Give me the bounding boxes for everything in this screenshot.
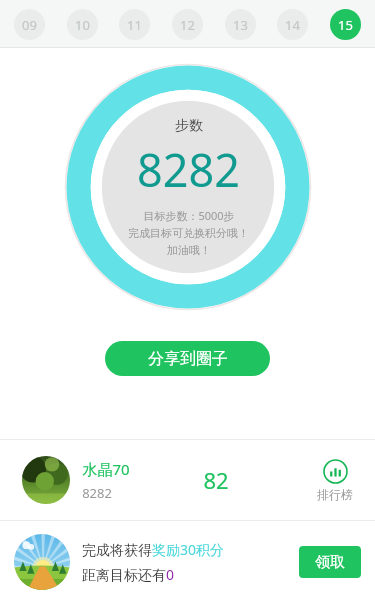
button[interactable]: 领取: [299, 546, 361, 578]
button[interactable]: 09: [14, 9, 45, 40]
button[interactable]: 14: [277, 9, 308, 40]
staticText: 15: [338, 16, 353, 34]
staticText: 领取: [315, 553, 345, 572]
staticText: 加油哦！: [167, 243, 211, 257]
staticText: 11: [127, 16, 142, 34]
button[interactable]: 10: [67, 9, 98, 40]
staticText: 步数: [175, 117, 203, 135]
staticText: 12: [180, 16, 195, 34]
button[interactable]: 15: [330, 9, 361, 40]
staticText: 09: [22, 16, 37, 34]
staticText: 距离目标还有0: [82, 565, 175, 584]
button[interactable]: 11: [119, 9, 150, 40]
staticText: 8282: [82, 484, 112, 502]
staticText: 排行榜: [317, 487, 353, 502]
button[interactable]: 水晶70: [0, 440, 375, 520]
button[interactable]: 排行榜: [313, 455, 357, 506]
button[interactable]: 13: [225, 9, 256, 40]
staticText: 目标步数：5000步: [143, 208, 235, 223]
staticText: 完成目标可兑换积分哦！: [128, 226, 249, 240]
button[interactable]: 分享到圈子: [105, 341, 270, 376]
button[interactable]: 12: [172, 9, 203, 40]
staticText: 分享到圈子: [148, 349, 228, 369]
staticText: 水晶70: [82, 459, 130, 479]
staticText: 13: [233, 16, 248, 34]
staticText: 8282: [137, 139, 240, 200]
staticText: 完成将获得奖励30积分: [82, 540, 225, 559]
staticText: 82: [203, 465, 229, 495]
staticText: 14: [285, 16, 300, 34]
staticText: 10: [75, 16, 90, 34]
